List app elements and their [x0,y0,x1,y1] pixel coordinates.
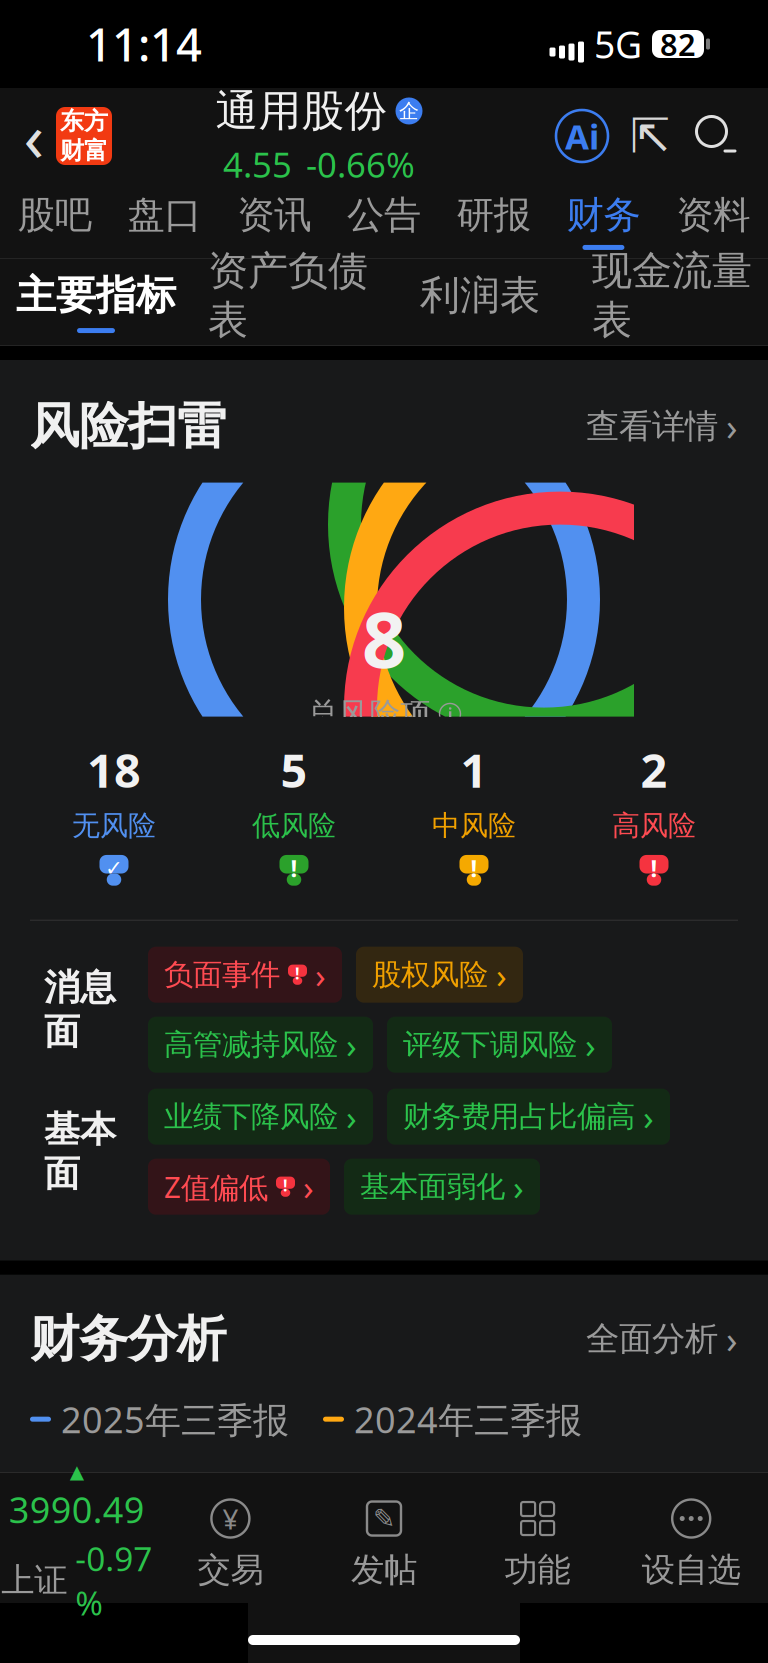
button[interactable]: ¥ [154,1495,307,1590]
staticText: -0.66% [306,141,415,187]
staticText: -0.97% [75,1536,152,1625]
staticText: 资产负债表 [208,246,368,345]
staticText: ! [470,852,477,884]
button[interactable]: 财务 [549,184,658,258]
staticText: 发帖 [351,1549,417,1590]
button[interactable]: 高管减持风险 [148,1017,373,1073]
staticText: 1 [460,739,487,801]
button[interactable]: AI 助手 [556,110,608,162]
staticText: 股吧 [18,192,92,238]
staticText: i [447,701,452,726]
staticText: ! [290,852,297,884]
staticText: › [513,1164,524,1210]
button[interactable]: 上证指数 3990.49 [0,1461,154,1625]
staticText: 现金流量表 [592,246,752,345]
staticText: 功能 [505,1549,571,1590]
staticText: 18 [87,739,141,801]
staticText: 风险扫雷 [30,396,226,457]
staticText: Z值偏低 [164,1167,268,1206]
staticText: 2025年三季报 [61,1395,289,1443]
staticText: › [496,952,507,998]
staticText: 研报 [457,192,531,238]
staticText: › [346,1022,357,1068]
staticText: 全面分析 [586,1318,718,1359]
staticText: ⇱ [630,109,670,163]
staticText: 82 [660,24,696,64]
staticText: › [303,1164,314,1210]
staticText: 低风险 [252,809,336,843]
button[interactable]: ✎ [307,1495,461,1590]
staticText: 财务费用占比偏高 [403,1099,635,1135]
staticText: 通用股份 [215,85,387,137]
button[interactable]: 资料 [658,184,768,258]
staticText: ✓ [105,856,123,880]
staticText: 股权风险 [372,957,488,993]
button[interactable]: 业绩下降风险 [148,1089,373,1145]
staticText: 8 [362,586,406,689]
button[interactable]: 基本面弱化 [344,1159,540,1215]
staticText: 无风险 [72,809,156,843]
staticText: 2024年三季报 [354,1395,582,1443]
staticText: › [315,952,326,998]
staticText: 高管减持风险 [164,1027,338,1063]
staticText: ✎ [373,1503,395,1534]
button[interactable]: 盘口 [110,184,219,258]
button[interactable]: 现金流量表 [576,259,768,345]
button[interactable]: Z值偏低 [148,1159,330,1215]
staticText: 上证 [1,1560,67,1601]
button[interactable]: 利润表 [384,259,576,345]
staticText: 5 [280,739,307,801]
staticText: 11:14 [86,14,202,74]
staticText: 主要指标 [16,271,176,320]
button[interactable]: 股吧 [0,184,110,258]
staticText: 公告 [347,192,421,238]
staticText: ! [295,963,300,984]
staticText: › [346,1094,357,1140]
button[interactable]: 研报 [439,184,549,258]
staticText: 企 [399,99,419,123]
staticText: 资讯 [237,192,311,238]
button[interactable]: 东方财富首页 [56,107,112,165]
button[interactable]: 全面分析 [586,1314,738,1364]
staticText: ! [283,1175,288,1196]
staticText: 盘口 [128,192,202,238]
button[interactable]: 主要指标 [0,259,192,345]
staticText: › [726,401,738,451]
staticText: Ai [565,113,599,159]
button[interactable]: 资讯 [219,184,329,258]
button[interactable]: 设自选 [614,1495,768,1590]
staticText: 东方 [60,106,108,136]
staticText: ‹ [23,92,44,180]
staticText: ▲ [70,1461,84,1482]
staticText: ¥ [222,1500,238,1537]
button[interactable]: 评级下调风险 [387,1017,612,1073]
button[interactable]: 查看详情 [586,401,738,451]
button[interactable]: 股权风险 [356,947,523,1003]
button[interactable]: 负面事件 [148,947,342,1003]
staticText: 交易 [197,1549,263,1590]
button[interactable]: 财务费用占比偏高 [387,1089,670,1145]
staticText: 财务 [566,192,640,238]
staticText: › [726,1314,738,1364]
staticText: 基本面弱化 [360,1169,505,1205]
staticText: 财务分析 [30,1309,226,1369]
staticText: 总风险项 [307,695,431,733]
button[interactable]: 公告 [329,184,439,258]
button[interactable]: 返回 [12,108,56,164]
staticText: 财富 [60,136,108,165]
button[interactable]: 分享 [628,112,672,160]
staticText: 4.55 [223,141,292,187]
button[interactable]: 功能 [461,1495,614,1590]
button[interactable]: 搜索 [692,112,740,160]
staticText: 高风险 [612,809,696,843]
staticText: 负面事件 [164,957,280,993]
button[interactable]: 资产负债表 [192,259,384,345]
staticText: ! [650,852,657,884]
staticText: 评级下调风险 [403,1027,577,1063]
staticText: 资料 [676,192,750,238]
staticText: 设自选 [642,1549,741,1590]
staticText: 消息面 [44,965,116,1054]
staticText: 业绩下降风险 [164,1099,338,1135]
staticText: › [643,1094,654,1140]
staticText: 2 [640,739,667,801]
